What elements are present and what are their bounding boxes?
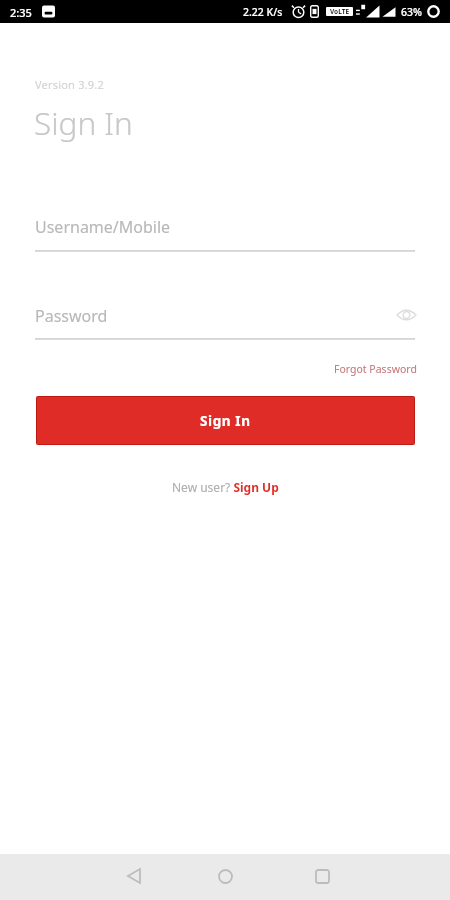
staticText: Version 3.9.2 [35, 77, 104, 92]
button[interactable]: Username/Mobile [35, 212, 415, 252]
button[interactable]: Forgot Password [332, 360, 419, 378]
button[interactable]: Home [201, 852, 249, 900]
staticText: Password [35, 305, 108, 327]
staticText: 2:35 [10, 5, 32, 20]
staticText: Username/Mobile [35, 216, 171, 238]
staticText: New user? Sign Up [172, 479, 279, 495]
staticText: Sign In [200, 412, 251, 430]
staticText: VoLTE [330, 7, 350, 16]
button[interactable]: Sign In [37, 397, 414, 444]
staticText: 2.22 K/s [243, 5, 283, 19]
staticText: 63% [401, 5, 422, 19]
button[interactable]: Password [35, 301, 415, 341]
button[interactable]: Recents [298, 852, 346, 900]
button[interactable]: Back [110, 852, 158, 900]
staticText: Forgot Password [334, 362, 417, 376]
staticText: Sign In [34, 101, 133, 144]
button[interactable]: Show password [394, 303, 418, 327]
button[interactable]: New user? Sign Up [170, 477, 281, 497]
